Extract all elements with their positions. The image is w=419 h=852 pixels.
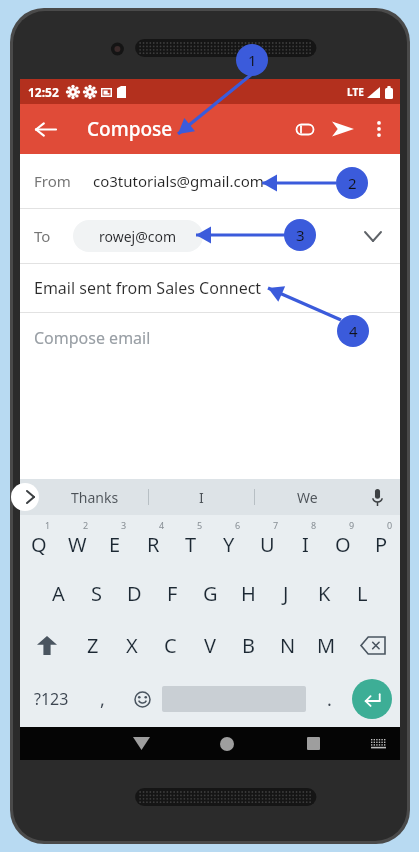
button[interactable]: Back bbox=[26, 110, 64, 148]
staticText: U bbox=[260, 531, 275, 558]
staticText: J bbox=[283, 580, 289, 607]
button[interactable]: Home bbox=[184, 727, 270, 760]
staticText: W bbox=[68, 531, 87, 558]
staticText: From bbox=[34, 171, 71, 191]
staticText: Compose email bbox=[34, 327, 151, 349]
staticText: I bbox=[199, 488, 204, 507]
staticText: N bbox=[280, 632, 296, 659]
button[interactable]: 2 bbox=[58, 515, 96, 567]
staticText: C bbox=[164, 632, 177, 659]
staticText: B bbox=[242, 632, 255, 659]
button[interactable]: Emoji bbox=[122, 671, 162, 727]
staticText: 5 bbox=[197, 519, 203, 531]
staticText: 2 bbox=[348, 173, 357, 193]
button[interactable]: X bbox=[112, 619, 151, 671]
staticText: L bbox=[357, 580, 368, 607]
button[interactable]: M bbox=[307, 619, 346, 671]
staticText: Thanks bbox=[71, 488, 119, 507]
button[interactable]: 8 bbox=[286, 515, 324, 567]
button[interactable]: ?123 bbox=[20, 671, 82, 727]
staticText: 12:52 bbox=[28, 84, 59, 100]
button[interactable]: N bbox=[268, 619, 307, 671]
button[interactable]: Thanks bbox=[42, 479, 148, 515]
button[interactable]: Backspace bbox=[346, 619, 400, 671]
button[interactable]: 0 bbox=[362, 515, 400, 567]
button[interactable]: More options bbox=[362, 112, 396, 146]
staticText: ?123 bbox=[34, 688, 69, 710]
staticText: Email sent from Sales Connect bbox=[34, 277, 262, 299]
staticText: 4 bbox=[159, 519, 165, 531]
button[interactable]: G bbox=[191, 567, 229, 619]
staticText: 9 bbox=[349, 519, 355, 531]
button[interactable]: Expand toolbar bbox=[11, 483, 39, 511]
button[interactable]: D bbox=[115, 567, 153, 619]
staticText: Compose bbox=[87, 116, 173, 142]
button[interactable]: We bbox=[255, 479, 360, 515]
staticText: H bbox=[241, 580, 256, 607]
staticText: X bbox=[126, 632, 138, 659]
button[interactable]: Attach file bbox=[286, 110, 324, 148]
staticText: A bbox=[52, 580, 65, 607]
button[interactable]: From bbox=[20, 154, 400, 208]
button[interactable]: Email sent from Sales Connect bbox=[20, 264, 400, 312]
staticText: 7 bbox=[273, 519, 279, 531]
button[interactable]: rowej@com bbox=[99, 220, 177, 252]
button[interactable]: Enter bbox=[352, 679, 392, 719]
staticText: V bbox=[204, 632, 216, 659]
button[interactable]: 9 bbox=[324, 515, 362, 567]
staticText: 8 bbox=[311, 519, 317, 531]
staticText: 3 bbox=[296, 225, 305, 245]
button[interactable]: Voice input bbox=[360, 479, 394, 515]
staticText: 6 bbox=[235, 519, 241, 531]
button[interactable]: , bbox=[82, 671, 122, 727]
button[interactable]: Send bbox=[324, 110, 362, 148]
staticText: . bbox=[327, 687, 332, 712]
staticText: Q bbox=[31, 531, 47, 558]
button[interactable]: Expand recipients bbox=[356, 219, 390, 253]
staticText: E bbox=[109, 531, 121, 558]
button[interactable]: 6 bbox=[210, 515, 248, 567]
button[interactable]: S bbox=[77, 567, 115, 619]
staticText: rowej@com bbox=[99, 227, 177, 246]
staticText: O bbox=[335, 531, 351, 558]
staticText: Y bbox=[223, 531, 235, 558]
staticText: LTE bbox=[347, 85, 364, 99]
staticText: T bbox=[185, 531, 197, 558]
button[interactable]: 4 bbox=[134, 515, 172, 567]
button[interactable]: H bbox=[229, 567, 267, 619]
button[interactable]: A bbox=[39, 567, 77, 619]
button[interactable]: J bbox=[267, 567, 305, 619]
button[interactable]: To bbox=[20, 209, 400, 263]
button[interactable]: C bbox=[151, 619, 190, 671]
button[interactable]: F bbox=[153, 567, 191, 619]
button[interactable]: Z bbox=[73, 619, 112, 671]
button[interactable]: Switch keyboard bbox=[356, 727, 400, 760]
staticText: co3tutorials@gmail.com bbox=[93, 171, 264, 191]
button[interactable]: I bbox=[149, 479, 254, 515]
button[interactable]: 3 bbox=[96, 515, 134, 567]
button[interactable]: 5 bbox=[172, 515, 210, 567]
button[interactable]: V bbox=[190, 619, 229, 671]
staticText: 4 bbox=[349, 321, 358, 341]
button[interactable]: Back bbox=[98, 727, 184, 760]
staticText: 1 bbox=[248, 50, 257, 70]
button[interactable]: B bbox=[229, 619, 268, 671]
button[interactable]: Compose email bbox=[20, 313, 400, 363]
staticText: Z bbox=[87, 632, 99, 659]
staticText: G bbox=[203, 580, 218, 607]
staticText: To bbox=[34, 226, 51, 246]
button[interactable]: K bbox=[305, 567, 343, 619]
staticText: F bbox=[167, 580, 178, 607]
button[interactable]: 1 bbox=[20, 515, 58, 567]
staticText: 0 bbox=[387, 519, 393, 531]
staticText: 1 bbox=[45, 519, 51, 531]
staticText: P bbox=[375, 531, 388, 558]
staticText: I bbox=[302, 531, 309, 558]
button[interactable]: L bbox=[343, 567, 381, 619]
button[interactable]: Shift bbox=[20, 619, 73, 671]
button[interactable]: 7 bbox=[248, 515, 286, 567]
staticText: 2 bbox=[83, 519, 89, 531]
button[interactable]: . bbox=[306, 671, 352, 727]
button[interactable]: Recents bbox=[270, 727, 356, 760]
